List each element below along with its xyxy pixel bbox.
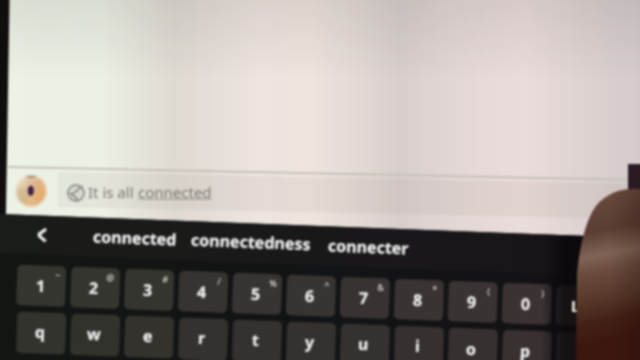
staticText: 0: [521, 293, 531, 315]
staticText: w: [87, 323, 101, 345]
staticText: 5: [251, 283, 261, 305]
button[interactable]: 2: [70, 266, 121, 309]
staticText: u: [358, 333, 369, 355]
staticText: (: [487, 284, 491, 297]
staticText: o: [466, 338, 477, 360]
staticText: p: [520, 340, 531, 360]
staticText: ): [541, 286, 545, 299]
button[interactable]: r: [178, 316, 229, 360]
button[interactable]: 7: [340, 276, 391, 319]
button[interactable]: u: [340, 322, 391, 360]
staticText: ^: [324, 278, 331, 291]
staticText: e: [143, 325, 153, 347]
button[interactable]: Previous suggestions: [30, 223, 54, 247]
staticText: &: [377, 280, 385, 293]
staticText: connected: [138, 182, 212, 202]
staticText: @: [106, 270, 116, 283]
button[interactable]: o: [448, 327, 499, 360]
other: Globe: [67, 184, 85, 202]
staticText: *: [432, 282, 438, 295]
staticText: connecter: [328, 234, 409, 259]
staticText: #: [162, 272, 169, 285]
staticText: 4: [197, 281, 207, 303]
staticText: %: [269, 276, 278, 289]
staticText: connected: [93, 225, 177, 250]
staticText: t: [252, 329, 259, 351]
staticText: 9: [467, 291, 477, 313]
staticText: 8: [413, 289, 423, 311]
staticText: r: [198, 327, 206, 349]
button[interactable]: e: [124, 314, 175, 358]
button[interactable]: 6: [286, 274, 337, 317]
button[interactable]: 1: [17, 264, 68, 307]
staticText: 3: [143, 279, 153, 301]
staticText: 2: [89, 277, 99, 299]
button[interactable]: 0: [502, 282, 553, 325]
staticText: i: [415, 335, 420, 357]
button[interactable]: t: [232, 318, 283, 360]
staticText: y: [305, 331, 315, 353]
button[interactable]: y: [286, 320, 337, 360]
button[interactable]: 4: [178, 270, 229, 313]
staticText: L: [571, 296, 580, 316]
button[interactable]: 8: [394, 278, 445, 321]
button[interactable]: 3: [124, 268, 175, 311]
staticText: /: [217, 274, 222, 287]
button[interactable]: p: [502, 329, 553, 360]
staticText: It is all: [88, 182, 138, 202]
staticText: 7: [359, 287, 369, 309]
button[interactable]: connected: [92, 223, 177, 252]
button[interactable]: q: [17, 310, 68, 354]
button[interactable]: w: [70, 312, 121, 356]
button[interactable]: L: [571, 296, 587, 316]
button[interactable]: 9: [448, 280, 499, 323]
staticText: connectedness: [191, 229, 311, 255]
button[interactable]: connectedness: [191, 227, 311, 257]
staticText: 6: [305, 285, 315, 307]
button[interactable]: connecter: [327, 232, 409, 261]
button[interactable]: It is all: [88, 181, 212, 203]
staticText: q: [35, 321, 46, 343]
button[interactable]: i: [394, 324, 445, 360]
button[interactable]: 5: [232, 272, 283, 315]
staticText: ~: [55, 268, 62, 281]
staticText: 1: [36, 275, 46, 297]
button[interactable]: Profile picture: [15, 175, 47, 207]
